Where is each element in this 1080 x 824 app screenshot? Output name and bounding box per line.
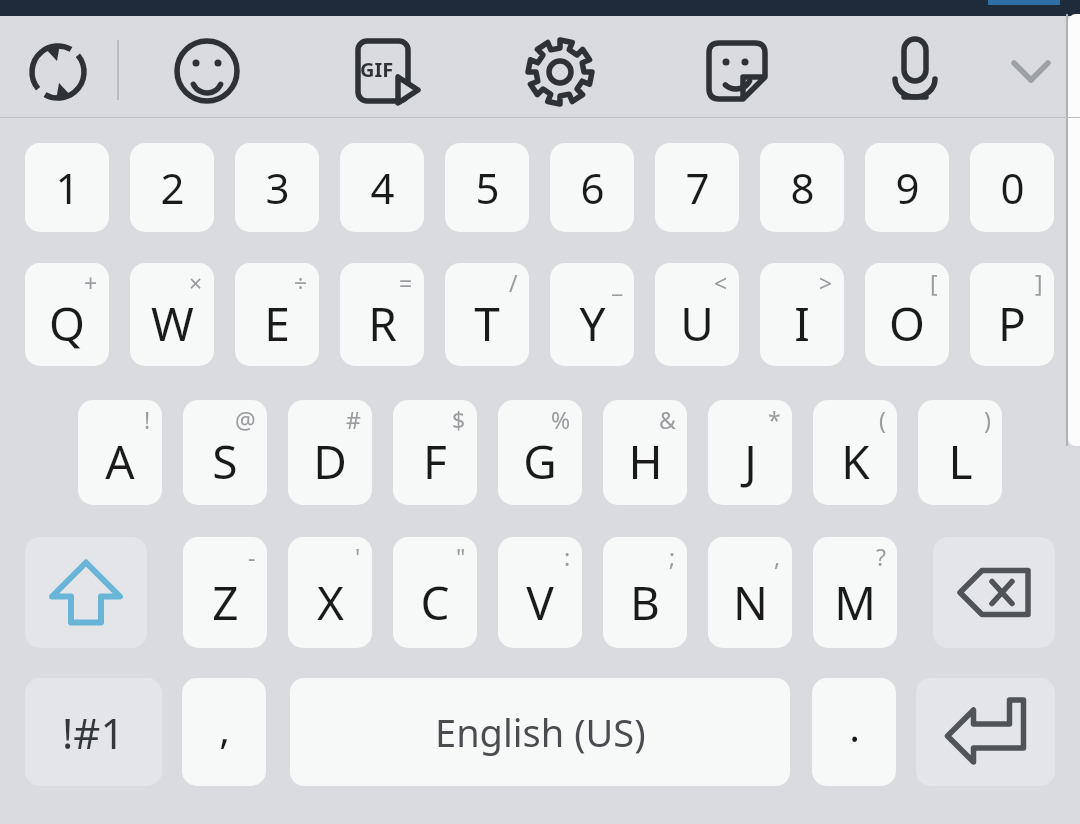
staticText: % [551,404,571,435]
staticText: < [714,267,728,298]
staticText: ? [876,541,886,572]
button[interactable]: V [498,537,582,648]
staticText: H [628,430,663,493]
button[interactable]: O [865,263,949,366]
button[interactable]: C [393,537,477,648]
staticText: 9 [895,159,920,216]
button[interactable]: Settings [524,36,596,108]
staticText: C [420,571,450,634]
button[interactable]: R [340,263,424,366]
staticText: T [474,292,500,355]
staticText: 2 [160,159,185,216]
button[interactable]: 6 [550,143,634,232]
button[interactable]: Stickers [702,36,772,106]
button[interactable]: 1 [25,143,109,232]
button[interactable]: K [813,400,897,505]
button[interactable]: Collapse toolbar [1000,36,1062,106]
staticText: X [317,571,344,634]
staticText: E [264,292,290,355]
button[interactable]: E [235,263,319,366]
staticText: _ [612,267,623,298]
button[interactable]: I [760,263,844,366]
button[interactable]: 7 [655,143,739,232]
staticText: D [313,430,347,493]
staticText: ( [879,404,886,435]
staticText: 7 [685,159,710,216]
staticText: 0 [1000,159,1025,216]
staticText: # [346,404,361,435]
staticText: !#1 [62,704,125,761]
button[interactable]: D [288,400,372,505]
staticText: " [456,541,466,572]
button[interactable]: 9 [865,143,949,232]
button[interactable]: Voice input [880,36,950,106]
button[interactable]: , [182,678,266,786]
button[interactable]: Shift [25,537,147,648]
button[interactable]: J [708,400,792,505]
button[interactable]: Enter [916,678,1055,786]
button[interactable]: A [78,400,162,505]
button[interactable]: H [603,400,687,505]
button[interactable]: L [918,400,1002,505]
staticText: $ [452,404,466,435]
staticText: ' [355,541,361,572]
staticText: 8 [790,159,815,216]
button[interactable]: . [812,678,896,786]
button[interactable]: !#1 [25,678,162,786]
staticText: English (US) [435,706,646,758]
button[interactable]: English (US) [290,678,790,786]
button[interactable]: Emoji [172,36,242,106]
button[interactable]: Y [550,263,634,366]
button[interactable]: G [498,400,582,505]
button[interactable]: GIF [348,36,418,106]
button[interactable]: 2 [130,143,214,232]
staticText: 4 [370,159,395,216]
staticText: [ [930,267,938,298]
staticText: R [368,292,397,355]
button[interactable]: U [655,263,739,366]
staticText: 5 [475,159,500,216]
button[interactable]: 0 [970,143,1054,232]
button[interactable]: Text conversion [22,36,94,108]
staticText: ÷ [294,267,308,298]
staticText: V [526,571,554,634]
staticText: M [834,571,876,634]
button[interactable]: P [970,263,1054,366]
staticText: GIF [360,56,394,83]
staticText: ) [984,404,991,435]
button[interactable]: 5 [445,143,529,232]
staticText: F [423,430,447,493]
staticText: B [630,571,660,634]
button[interactable]: 8 [760,143,844,232]
staticText: * [768,404,781,435]
staticText: J [744,430,757,493]
staticText: A [105,430,135,493]
staticText: + [84,267,98,298]
button[interactable]: 3 [235,143,319,232]
staticText: 6 [580,159,605,216]
button[interactable]: Q [25,263,109,366]
staticText: 1 [55,159,80,216]
staticText: 3 [265,159,290,216]
button[interactable]: W [130,263,214,366]
staticText: ! [144,404,151,435]
button[interactable]: 4 [340,143,424,232]
button[interactable]: B [603,537,687,648]
button[interactable]: F [393,400,477,505]
button[interactable]: T [445,263,529,366]
button[interactable]: X [288,537,372,648]
staticText: U [680,292,714,355]
button[interactable]: Backspace [933,537,1055,648]
button[interactable]: S [183,400,267,505]
button[interactable]: M [813,537,897,648]
staticText: > [819,267,833,298]
staticText: : [564,541,571,572]
staticText: S [212,430,238,493]
staticText: - [248,541,256,572]
staticText: O [889,292,925,355]
button[interactable]: Z [183,537,267,648]
staticText: , [219,701,230,755]
staticText: Q [49,292,85,355]
button[interactable]: N [708,537,792,648]
staticText: × [189,267,203,298]
